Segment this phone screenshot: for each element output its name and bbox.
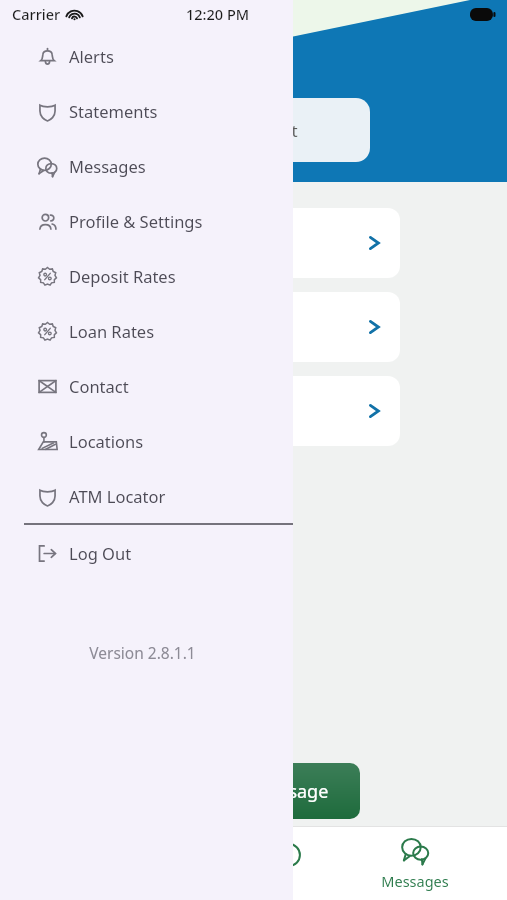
button[interactable]: Loan Rates bbox=[0, 303, 293, 358]
button[interactable]: Alerts bbox=[0, 28, 293, 83]
button[interactable]: Deposit Rates bbox=[0, 248, 293, 303]
button[interactable]: Profile & Settings bbox=[0, 193, 293, 248]
staticText: Log Out bbox=[69, 542, 132, 564]
staticText: Loan Rates bbox=[69, 320, 155, 342]
button[interactable]: Log Out bbox=[0, 525, 293, 580]
staticText: Profile & Settings bbox=[69, 210, 203, 232]
staticText: Deposit Rates bbox=[69, 265, 176, 287]
staticText: Contact bbox=[69, 375, 129, 397]
staticText: Messages bbox=[381, 871, 449, 891]
staticText: Statements bbox=[69, 100, 158, 122]
button[interactable]: Statements bbox=[0, 83, 293, 138]
staticText: Messages bbox=[69, 155, 146, 177]
staticText: New Message bbox=[211, 779, 329, 804]
button[interactable]: Messages bbox=[0, 138, 293, 193]
button[interactable]: New Message bbox=[180, 763, 360, 819]
staticText: 12:20 PM bbox=[186, 4, 250, 24]
button[interactable] bbox=[210, 208, 400, 278]
staticText: Version 2.8.1.1 bbox=[0, 642, 285, 663]
button[interactable]: Contact bbox=[0, 358, 293, 413]
button[interactable] bbox=[210, 376, 400, 446]
button[interactable]: ATM Locator bbox=[0, 468, 293, 523]
staticText: ATM Locator bbox=[69, 485, 166, 507]
staticText: Locations bbox=[69, 430, 144, 452]
staticText: Sent bbox=[262, 119, 298, 142]
staticText: Carrier bbox=[12, 4, 61, 24]
staticText: Alerts bbox=[69, 45, 114, 67]
button[interactable]: Sent bbox=[200, 98, 370, 162]
button[interactable] bbox=[210, 292, 400, 362]
button[interactable]: Locations bbox=[0, 413, 293, 468]
button[interactable]: Messages bbox=[365, 826, 465, 900]
